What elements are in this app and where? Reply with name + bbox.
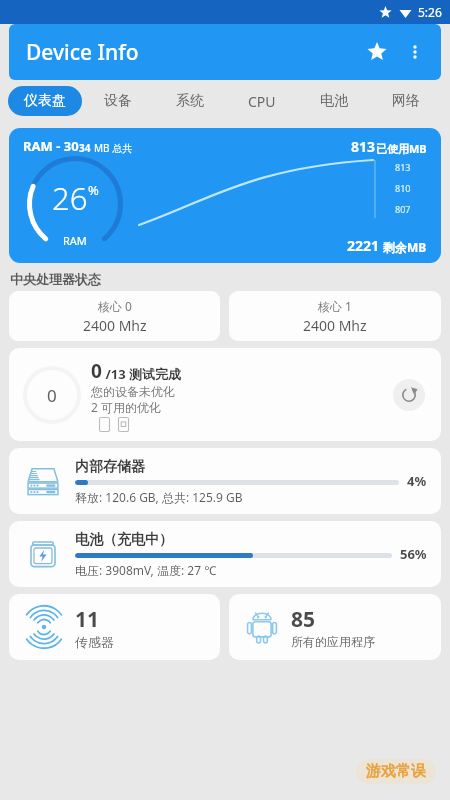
staticText: 剩余MB [383, 239, 427, 255]
staticText: 2221 [347, 236, 383, 255]
staticText: 电池 [320, 92, 348, 110]
staticText: 810 [395, 182, 411, 194]
staticText: 设备 [104, 92, 132, 110]
staticText: 释放: 120.6 GB, 总共: 125.9 GB [75, 489, 243, 505]
staticText: Device Info [26, 38, 139, 67]
staticText: /13 测试完成 [102, 365, 182, 383]
staticText: 您的设备未优化 [91, 384, 175, 399]
button[interactable]: 内部存储器 [9, 448, 441, 514]
staticText: 2 可用的优化 [91, 399, 161, 415]
button[interactable]: More options [397, 34, 433, 70]
button[interactable]: 仪表盘 [8, 86, 82, 116]
button[interactable]: 电池（充电中） [9, 521, 441, 587]
staticText: 已使用MB [376, 141, 427, 156]
staticText: 4% [407, 472, 427, 490]
staticText: 5:26 [418, 4, 442, 20]
staticText: 电池（充电中） [75, 531, 173, 549]
staticText: RAM - 30 [23, 137, 79, 155]
staticText: 0 [91, 358, 102, 384]
button[interactable]: 85 [229, 594, 441, 660]
staticText: 电压: 3908mV, 温度: 27 ℃ [75, 562, 217, 578]
button[interactable]: 核心 0 [9, 291, 220, 341]
staticText: 网络 [392, 92, 420, 110]
staticText: 仪表盘 [24, 92, 66, 110]
button[interactable]: Favorite [357, 32, 397, 72]
staticText: 系统 [176, 92, 204, 110]
button[interactable]: 网络 [370, 80, 442, 122]
staticText: 0 [47, 384, 57, 407]
staticText: 813 [351, 137, 376, 156]
staticText: 传感器 [75, 634, 114, 650]
button[interactable]: 0 [9, 348, 441, 441]
button[interactable]: 电池 [298, 80, 370, 122]
staticText: MB 总共 [94, 141, 133, 155]
staticText: 56% [400, 545, 427, 563]
button[interactable]: RAM - 30 [9, 128, 441, 263]
staticText: 2400 Mhz [83, 316, 147, 335]
staticText: 807 [395, 203, 411, 215]
staticText: 中央处理器状态 [10, 271, 101, 287]
staticText: 内部存储器 [75, 458, 145, 476]
staticText: CPU [248, 92, 276, 111]
button[interactable]: CPU [226, 80, 298, 122]
button[interactable]: Refresh [393, 379, 425, 411]
staticText: 34 [79, 141, 94, 155]
button[interactable]: 系统 [154, 80, 226, 122]
staticText: 85 [291, 605, 316, 634]
staticText: % [88, 181, 99, 199]
staticText: 813 [395, 161, 411, 173]
staticText: 26 [52, 177, 88, 219]
staticText: 核心 1 [318, 298, 352, 314]
staticText: 游戏常误 [366, 762, 426, 781]
button[interactable]: 11 [9, 594, 220, 660]
button[interactable]: 设备 [82, 80, 154, 122]
staticText: 核心 0 [98, 298, 132, 314]
staticText: 所有的应用程序 [291, 634, 375, 649]
staticText: RAM [63, 233, 87, 248]
staticText: 2400 Mhz [303, 316, 367, 335]
staticText: 11 [75, 605, 100, 634]
button[interactable]: 核心 1 [229, 291, 441, 341]
